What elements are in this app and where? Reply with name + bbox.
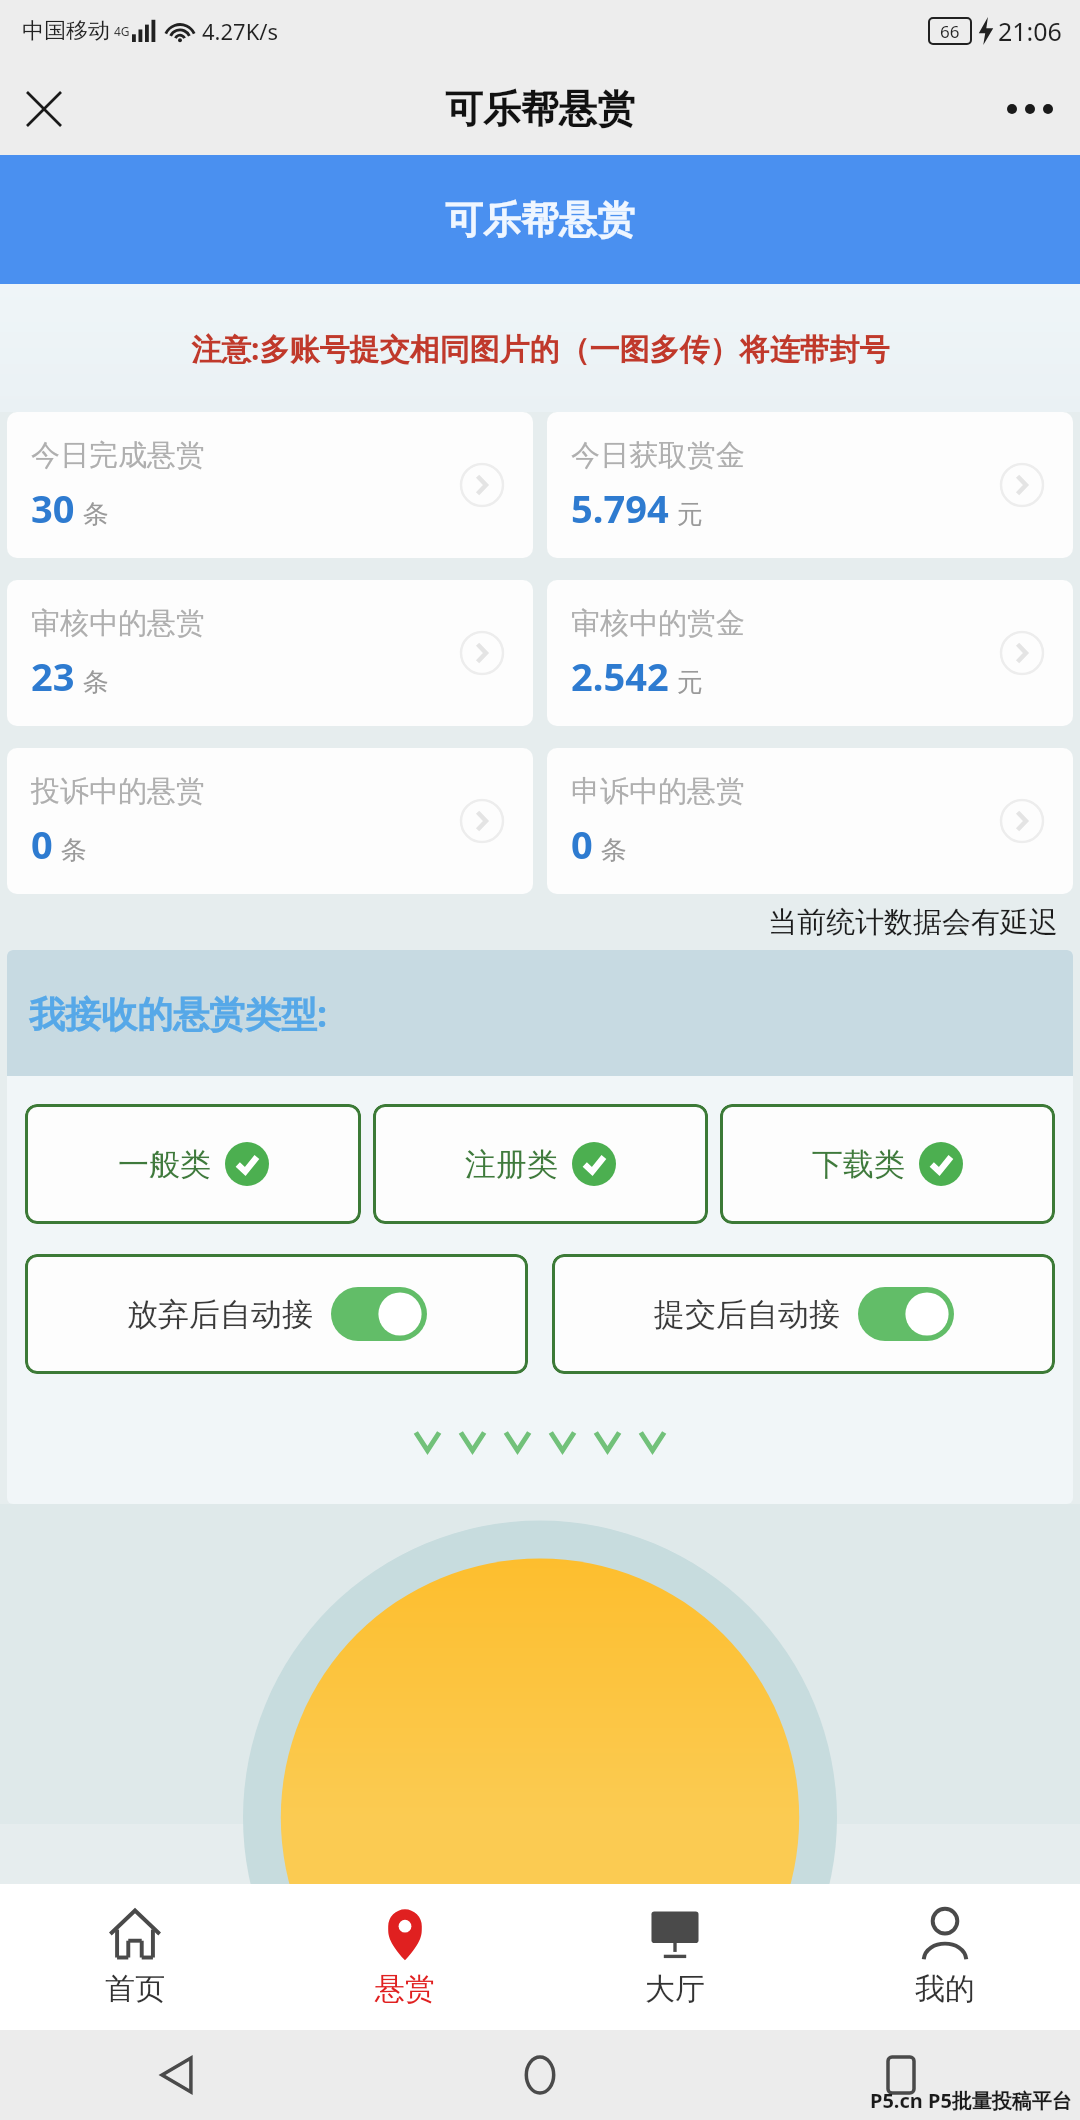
staticText: 可乐帮悬赏 xyxy=(445,196,635,244)
staticText: 我接收的悬赏类型: xyxy=(29,989,328,1038)
staticText: 可乐帮悬赏 xyxy=(445,85,635,133)
staticText: 条 xyxy=(61,834,87,867)
staticText: 元 xyxy=(677,666,703,699)
staticText: 审核中的赏金 xyxy=(571,605,745,642)
button[interactable]: 审核中的赏金 xyxy=(547,580,1073,726)
staticText: 21:06 xyxy=(998,14,1062,48)
button[interactable]: Close xyxy=(14,79,74,139)
button[interactable]: 今日完成悬赏 xyxy=(7,412,533,558)
staticText: P5.cn P5批量投稿平台 xyxy=(870,2087,1072,2114)
button[interactable]: 审核中的悬赏 xyxy=(7,580,533,726)
button[interactable]: 一般类 xyxy=(25,1104,361,1224)
staticText: 首页 xyxy=(105,1970,165,2008)
button[interactable]: 我的 xyxy=(810,1884,1080,2030)
staticText: 30 xyxy=(31,482,75,534)
staticText: 条 xyxy=(83,666,109,699)
button[interactable]: 提交后自动接 xyxy=(552,1254,1055,1374)
button[interactable]: 申诉中的悬赏 xyxy=(547,748,1073,894)
staticText: 4G xyxy=(114,23,130,39)
staticText: 大厅 xyxy=(645,1970,705,2008)
staticText: 5.794 xyxy=(571,482,669,534)
staticText: 下载类 xyxy=(812,1145,905,1184)
staticText: 提交后自动接 xyxy=(654,1295,840,1334)
button[interactable]: 首页 xyxy=(0,1884,270,2030)
staticText: 当前统计数据会有延迟 xyxy=(768,904,1058,941)
staticText: 审核中的悬赏 xyxy=(31,605,205,642)
staticText: 放弃后自动接 xyxy=(127,1295,313,1334)
staticText: 一般类 xyxy=(118,1145,211,1184)
button[interactable]: Home xyxy=(511,2046,569,2104)
button[interactable]: Back xyxy=(150,2046,208,2104)
staticText: 条 xyxy=(83,498,109,531)
staticText: 今日完成悬赏 xyxy=(31,437,205,474)
staticText: 我的 xyxy=(915,1970,975,2008)
staticText: 0 xyxy=(31,818,53,870)
button[interactable]: 注册类 xyxy=(373,1104,708,1224)
staticText: 2.542 xyxy=(571,650,669,702)
staticText: 中国移动 xyxy=(22,17,110,45)
button[interactable]: 今日获取赏金 xyxy=(547,412,1073,558)
staticText: 悬赏 xyxy=(375,1970,435,2008)
staticText: 申诉中的悬赏 xyxy=(571,773,745,810)
button[interactable]: 下载类 xyxy=(720,1104,1055,1224)
staticText: 注册类 xyxy=(465,1145,558,1184)
staticText: 66 xyxy=(940,20,960,43)
button[interactable]: 悬赏 xyxy=(270,1884,540,2030)
button[interactable]: 大厅 xyxy=(540,1884,810,2030)
button[interactable]: More options xyxy=(998,77,1062,141)
button[interactable]: 放弃后自动接 xyxy=(25,1254,528,1374)
staticText: 注意:多账号提交相同图片的（一图多传）将连带封号 xyxy=(191,328,890,369)
staticText: 4.27K/s xyxy=(202,16,278,46)
staticText: 今日获取赏金 xyxy=(571,437,745,474)
staticText: 条 xyxy=(601,834,627,867)
button[interactable]: 投诉中的悬赏 xyxy=(7,748,533,894)
staticText: 元 xyxy=(677,498,703,531)
staticText: 23 xyxy=(31,650,75,702)
staticText: 0 xyxy=(571,818,593,870)
button[interactable]: Recent apps xyxy=(872,2046,930,2104)
staticText: 投诉中的悬赏 xyxy=(31,773,205,810)
